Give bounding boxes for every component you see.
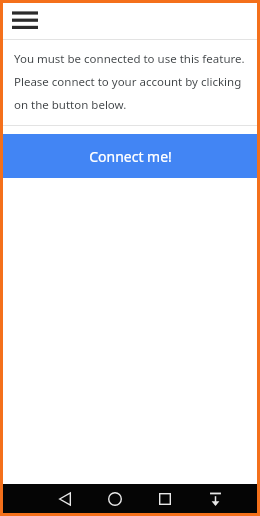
staticText: on the button below. xyxy=(14,97,127,113)
button[interactable]: Hide keyboard xyxy=(197,484,233,513)
staticText: Please connect to your account by clicki… xyxy=(14,74,242,90)
button[interactable]: Connect me! xyxy=(3,134,257,178)
button[interactable]: Recent apps xyxy=(147,484,183,513)
staticText: You must be connected to use this featur… xyxy=(14,51,245,67)
button[interactable]: Back xyxy=(47,484,83,513)
staticText: Connect me! xyxy=(89,147,172,166)
button[interactable]: Open navigation menu xyxy=(9,6,41,36)
button[interactable]: Home xyxy=(97,484,133,513)
